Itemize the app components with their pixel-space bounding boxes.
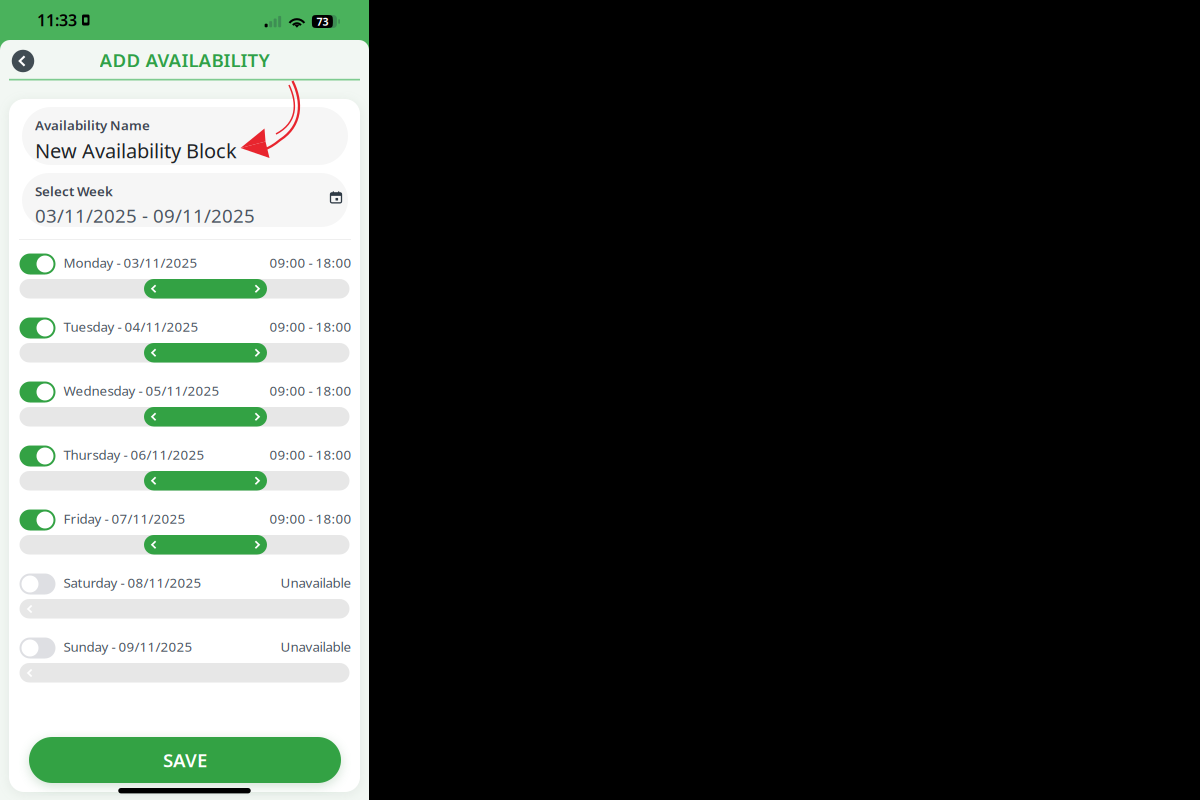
staticText: Monday - 03/11/2025 [63, 254, 197, 271]
staticText: Thursday - 06/11/2025 [63, 446, 204, 463]
button[interactable]: Select Week [22, 173, 348, 227]
staticText: 09:00 - 18:00 [269, 254, 351, 271]
staticText: Sunday - 09/11/2025 [63, 638, 192, 655]
button[interactable]: Enable Saturday - 08/11/2025 [19, 573, 55, 594]
staticText: 11:33 [37, 9, 77, 31]
button[interactable]: Disable Thursday - 06/11/2025 [19, 445, 55, 466]
button[interactable]: Disable Friday - 07/11/2025 [19, 509, 55, 530]
staticText: 09:00 - 18:00 [269, 446, 351, 463]
button[interactable]: Availability Name [22, 107, 348, 165]
staticText: SAVE [163, 747, 207, 773]
button[interactable]: Adjust hours for Monday - 03/11/2025 [144, 279, 267, 298]
button[interactable]: Disable Monday - 03/11/2025 [19, 253, 55, 274]
staticText: Friday - 07/11/2025 [63, 510, 185, 527]
button[interactable]: Back [8, 46, 38, 76]
staticText: 09:00 - 18:00 [269, 318, 351, 335]
staticText: ADD AVAILABILITY [99, 47, 269, 73]
staticText: 03/11/2025 - 09/11/2025 [35, 203, 255, 228]
staticText: 09:00 - 18:00 [269, 510, 351, 527]
button[interactable]: Adjust hours for Thursday - 06/11/2025 [144, 471, 267, 490]
button[interactable]: Enable Sunday - 09/11/2025 [19, 637, 55, 658]
staticText: Select Week [35, 182, 113, 200]
staticText: Unavailable [280, 638, 351, 655]
button[interactable]: Disable Tuesday - 04/11/2025 [19, 317, 55, 338]
staticText: Unavailable [280, 574, 351, 591]
button[interactable]: SAVE [29, 737, 341, 783]
button[interactable]: Adjust hours for Tuesday - 04/11/2025 [144, 343, 267, 362]
staticText: New Availability Block [35, 137, 237, 164]
staticText: Wednesday - 05/11/2025 [63, 382, 219, 399]
button[interactable]: Adjust hours for Friday - 07/11/2025 [144, 535, 267, 554]
staticText: Saturday - 08/11/2025 [63, 574, 201, 591]
button[interactable]: Adjust hours for Wednesday - 05/11/2025 [144, 407, 267, 426]
staticText: Tuesday - 04/11/2025 [63, 318, 198, 335]
staticText: 73 [316, 14, 328, 29]
staticText: 09:00 - 18:00 [269, 382, 351, 399]
button[interactable]: Disable Wednesday - 05/11/2025 [19, 381, 55, 402]
staticText: Availability Name [35, 116, 150, 134]
